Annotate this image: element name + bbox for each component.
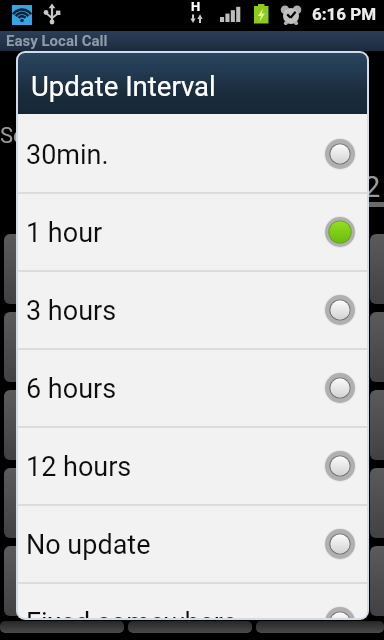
- staticText: 1 hour: [26, 217, 323, 249]
- staticText: No update: [26, 529, 323, 561]
- button[interactable]: 12 hours: [18, 428, 367, 504]
- staticText: Settings: [0, 123, 81, 149]
- staticText: 12 hours: [26, 451, 323, 483]
- button[interactable]: [0, 621, 124, 633]
- button[interactable]: Fixed somewhere: [18, 584, 367, 618]
- button[interactable]: [256, 621, 384, 633]
- button[interactable]: 3 hours: [18, 272, 367, 348]
- button[interactable]: No update: [18, 506, 367, 582]
- button[interactable]: 30min.: [18, 116, 367, 192]
- button[interactable]: 1 hour: [18, 194, 367, 270]
- staticText: Easy Local Call: [6, 32, 108, 50]
- staticText: H: [191, 0, 201, 14]
- staticText: 6:16 PM: [312, 4, 377, 24]
- button[interactable]: 6 hours: [18, 350, 367, 426]
- button[interactable]: [128, 621, 252, 633]
- staticText: 2: [364, 170, 381, 204]
- staticText: Fixed somewhere: [26, 607, 323, 618]
- staticText: Update Interval: [31, 70, 216, 102]
- staticText: 3 hours: [26, 295, 323, 327]
- staticText: 30min.: [26, 139, 323, 171]
- staticText: 6 hours: [26, 373, 323, 405]
